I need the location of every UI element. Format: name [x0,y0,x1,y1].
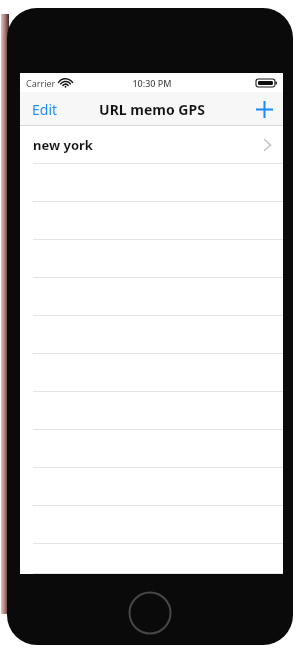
staticText: Carrier [26,77,56,89]
button[interactable] [20,468,283,506]
button[interactable] [20,354,283,392]
staticText: Edit [32,100,58,119]
button[interactable] [20,430,283,468]
button[interactable] [20,164,283,202]
button[interactable] [20,202,283,240]
button[interactable]: new york [20,126,283,164]
button[interactable] [20,240,283,278]
button[interactable] [20,278,283,316]
staticText: URL memo GPS [99,100,205,119]
other: Home [128,591,172,635]
button[interactable] [20,392,283,430]
staticText: 10:30 PM [132,77,172,89]
button[interactable] [20,544,283,574]
button[interactable]: Add [246,95,283,124]
button[interactable]: Edit [20,94,70,125]
button[interactable] [20,506,283,544]
button[interactable] [20,316,283,354]
staticText: new york [33,136,93,154]
